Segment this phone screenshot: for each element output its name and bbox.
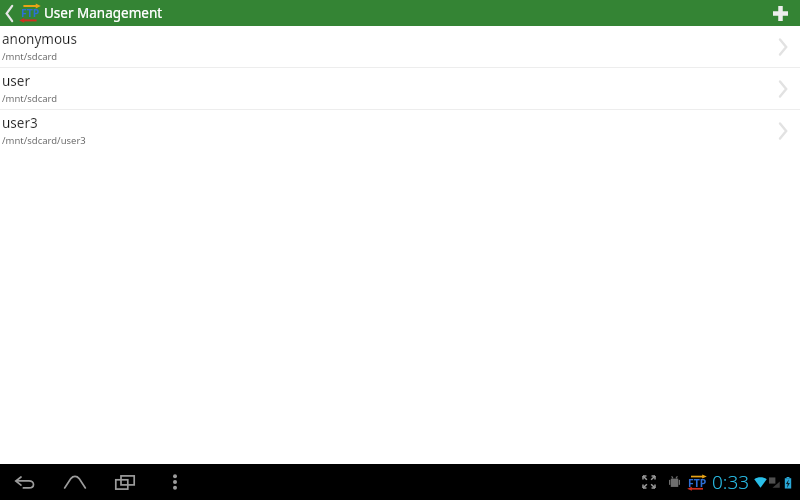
staticText: /mnt/sdcard bbox=[2, 92, 58, 105]
staticText: FTP bbox=[688, 476, 707, 490]
staticText: FTP bbox=[21, 6, 40, 20]
button[interactable]: Expand bbox=[638, 471, 660, 493]
button[interactable]: user3 bbox=[0, 110, 800, 151]
button[interactable]: Home bbox=[50, 464, 100, 500]
button[interactable]: user bbox=[0, 68, 800, 109]
button[interactable]: Back bbox=[0, 464, 50, 500]
staticText: user3 bbox=[2, 114, 38, 132]
button[interactable]: More options bbox=[150, 464, 200, 500]
button[interactable]: Add user bbox=[760, 0, 800, 26]
staticText: user bbox=[2, 72, 30, 90]
staticText: /mnt/sdcard bbox=[2, 50, 58, 63]
staticText: anonymous bbox=[2, 30, 77, 48]
staticText: 0:33 bbox=[712, 469, 750, 495]
staticText: User Management bbox=[44, 4, 163, 22]
button[interactable]: anonymous bbox=[0, 26, 800, 67]
staticText: /mnt/sdcard/user3 bbox=[2, 134, 86, 147]
button[interactable]: Back bbox=[0, 0, 43, 26]
button[interactable]: Recent apps bbox=[100, 464, 150, 500]
